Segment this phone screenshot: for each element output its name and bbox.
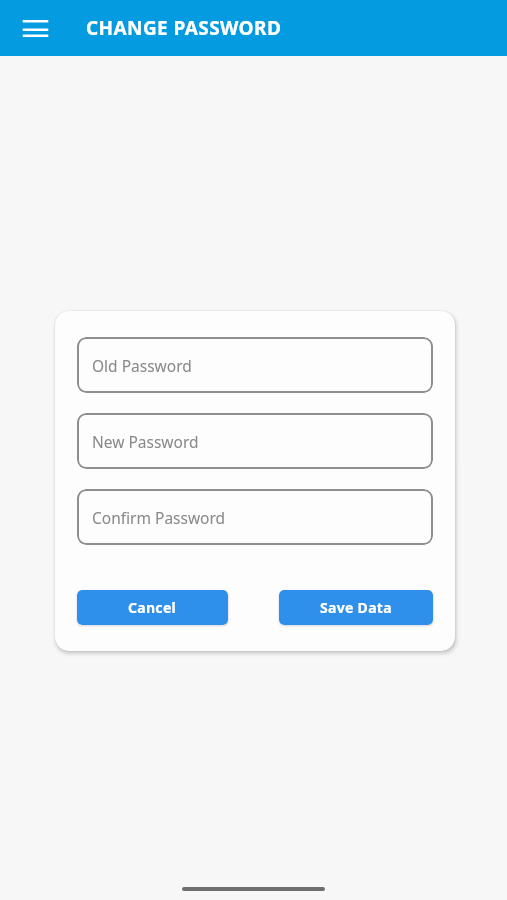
button[interactable]: New Password xyxy=(77,413,433,469)
staticText: Save Data xyxy=(320,598,392,617)
button[interactable]: Old Password xyxy=(77,337,433,393)
staticText: New Password xyxy=(92,431,199,452)
staticText: Confirm Password xyxy=(92,507,226,528)
staticText: CHANGE PASSWORD xyxy=(86,15,282,41)
button[interactable]: Cancel xyxy=(77,590,228,625)
staticText: Cancel xyxy=(128,598,177,617)
button[interactable]: Confirm Password xyxy=(77,489,433,545)
button[interactable]: Save Data xyxy=(279,590,433,625)
staticText: Old Password xyxy=(92,355,192,376)
button[interactable]: Open navigation menu xyxy=(13,6,57,50)
